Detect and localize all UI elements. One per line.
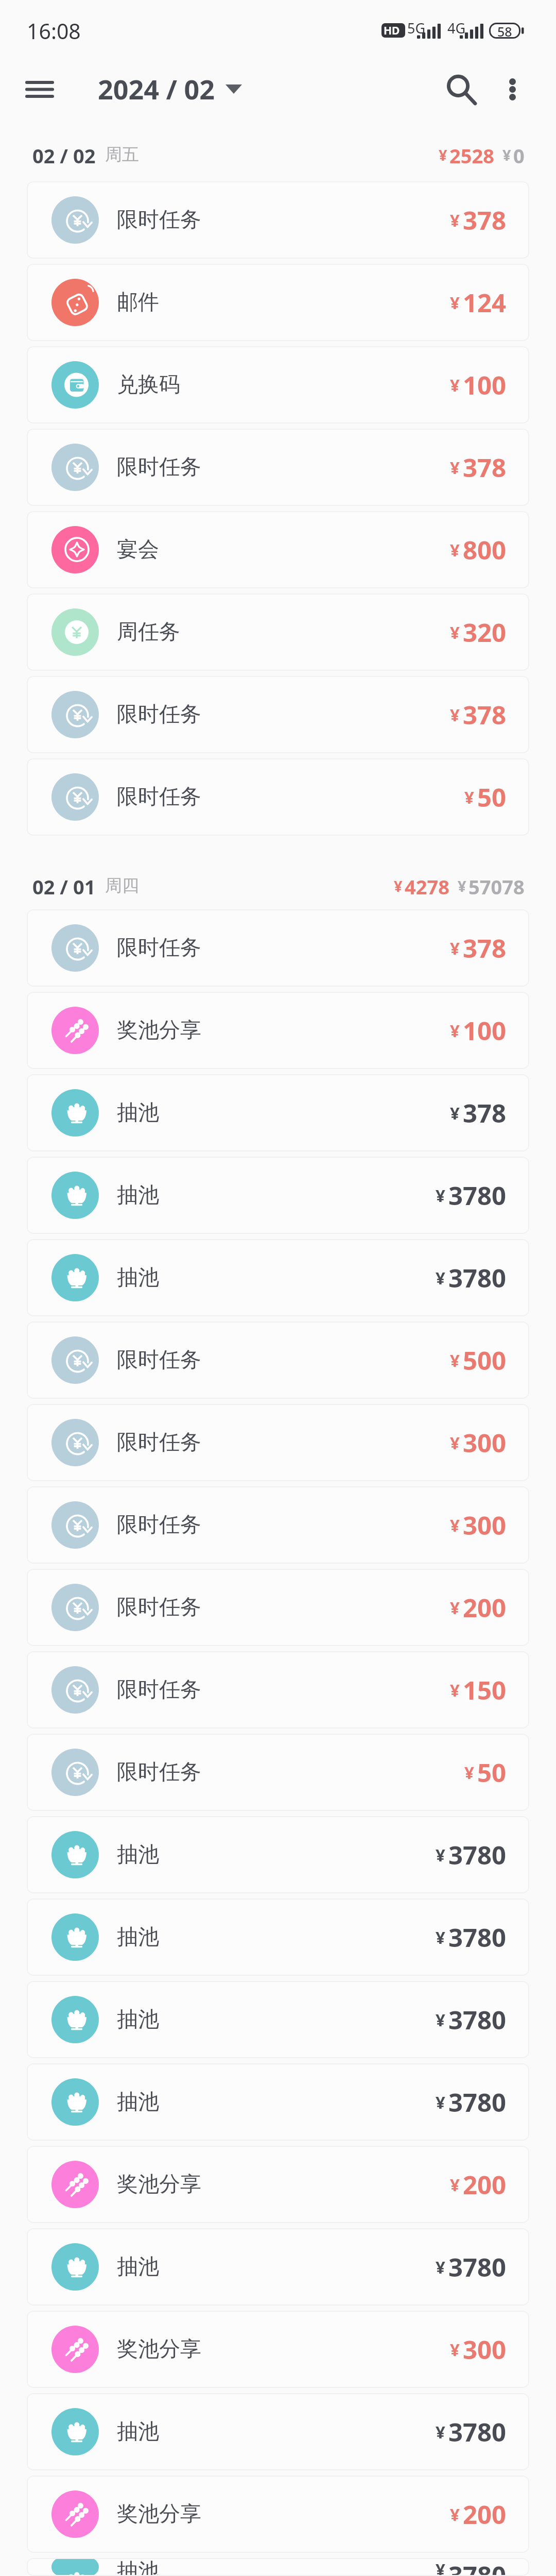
staticText: 邮件 [117, 289, 159, 316]
button[interactable]: 限时任务 [27, 1486, 529, 1564]
staticText: ¥ [450, 2173, 460, 2196]
staticText: 限时任务 [117, 701, 201, 728]
staticText: 周五 [105, 144, 139, 165]
staticText: 16:08 [27, 16, 81, 45]
button[interactable]: Menu [11, 61, 68, 117]
staticText: ¥ [464, 786, 474, 809]
staticText: 300 [463, 1426, 507, 1460]
staticText: ¥ [450, 456, 460, 479]
staticText: HD [384, 23, 400, 38]
button[interactable]: 限时任务 [27, 758, 529, 836]
staticText: 周四 [105, 875, 139, 896]
button[interactable]: 抽池 [27, 1981, 529, 2058]
staticText: 抽池 [117, 2253, 159, 2280]
button[interactable]: 限时任务 [27, 181, 529, 259]
button[interactable]: 奖池分享 [27, 992, 529, 1069]
button[interactable]: 抽池 [27, 2063, 529, 2141]
button[interactable]: 宴会 [27, 511, 529, 588]
staticText: 3780 [448, 1838, 507, 1872]
button[interactable]: 奖池分享 [27, 2311, 529, 2388]
staticText: 800 [463, 533, 507, 567]
staticText: ¥ [464, 1761, 474, 1784]
staticText: ¥ [450, 1349, 460, 1372]
staticText: ¥ [502, 145, 511, 165]
button[interactable]: 兑换码 [27, 346, 529, 423]
staticText: 抽池 [117, 1182, 159, 1209]
staticText: ¥ [458, 876, 466, 896]
staticText: ¥ [450, 1596, 460, 1619]
staticText: 200 [463, 1590, 507, 1625]
button[interactable]: 抽池 [27, 2228, 529, 2306]
staticText: 抽池 [117, 1841, 159, 1868]
staticText: 200 [463, 2167, 507, 2202]
button[interactable]: 限时任务 [27, 1734, 529, 1811]
staticText: 限时任务 [117, 1347, 201, 1374]
staticText: 58 [497, 23, 512, 39]
staticText: ¥ [436, 1843, 445, 1867]
staticText: ¥ [436, 2256, 445, 2279]
staticText: 300 [463, 1508, 507, 1543]
button[interactable]: 周任务 [27, 594, 529, 671]
staticText: 2528 [449, 142, 494, 167]
staticText: ¥ [450, 538, 460, 562]
button[interactable]: 抽池 [27, 1239, 529, 1316]
staticText: ¥ [394, 876, 403, 896]
button[interactable]: More options [484, 61, 541, 117]
staticText: 抽池 [117, 2089, 159, 2115]
staticText: 限时任务 [117, 1594, 201, 1621]
button[interactable]: 限时任务 [27, 676, 529, 753]
staticText: ¥ [450, 937, 460, 960]
staticText: 500 [463, 1343, 507, 1378]
staticText: 奖池分享 [117, 2171, 201, 2198]
staticText: 50 [477, 780, 507, 815]
staticText: 378 [463, 203, 507, 238]
staticText: 378 [463, 450, 507, 485]
button[interactable]: 奖池分享 [27, 2146, 529, 2223]
button[interactable]: 限时任务 [27, 429, 529, 506]
button[interactable]: 限时任务 [27, 1569, 529, 1646]
staticText: ¥ [450, 291, 460, 314]
button[interactable]: 抽池 [27, 1074, 529, 1151]
button[interactable]: 邮件 [27, 264, 529, 341]
staticText: 奖池分享 [117, 2336, 201, 2363]
staticText: 57078 [468, 873, 525, 898]
staticText: 2024 / 02 [98, 71, 215, 107]
button[interactable]: 限时任务 [27, 909, 529, 987]
button[interactable]: Search [432, 61, 489, 117]
button[interactable]: 奖池分享 [27, 2476, 529, 2553]
staticText: 0 [513, 142, 525, 167]
staticText: 宴会 [117, 536, 159, 563]
staticText: 02 / 01 [32, 873, 96, 898]
staticText: ¥ [450, 703, 460, 726]
staticText: 限时任务 [117, 784, 201, 810]
staticText: ¥ [450, 1514, 460, 1537]
button[interactable]: 限时任务 [27, 1321, 529, 1399]
button[interactable]: 抽池 [27, 1816, 529, 1893]
staticText: ¥ [436, 1184, 445, 1207]
staticText: 3780 [448, 2003, 507, 2037]
staticText: ¥ [436, 2558, 445, 2576]
staticText: ¥ [439, 145, 447, 165]
button[interactable]: 限时任务 [27, 1404, 529, 1481]
staticText: 限时任务 [117, 935, 201, 961]
staticText: 3780 [448, 1920, 507, 1955]
staticText: 限时任务 [117, 1512, 201, 1538]
staticText: 150 [463, 1673, 507, 1707]
button[interactable]: 抽池 [27, 1157, 529, 1234]
staticText: 抽池 [117, 1264, 159, 1291]
button[interactable]: 2024 / 02 [98, 71, 242, 107]
staticText: 100 [463, 368, 507, 402]
staticText: ¥ [450, 2503, 460, 2526]
staticText: 抽池 [117, 1924, 159, 1951]
button[interactable]: 抽池 [27, 2558, 529, 2576]
staticText: 3780 [448, 2415, 507, 2449]
staticText: 抽池 [117, 1099, 159, 1126]
button[interactable]: 抽池 [27, 1899, 529, 1976]
staticText: 周任务 [117, 619, 180, 646]
staticText: 124 [463, 285, 507, 320]
staticText: 3780 [448, 1261, 507, 1295]
button[interactable]: 抽池 [27, 2393, 529, 2470]
staticText: 3780 [448, 2085, 507, 2120]
staticText: ¥ [450, 1101, 460, 1125]
button[interactable]: 限时任务 [27, 1651, 529, 1728]
